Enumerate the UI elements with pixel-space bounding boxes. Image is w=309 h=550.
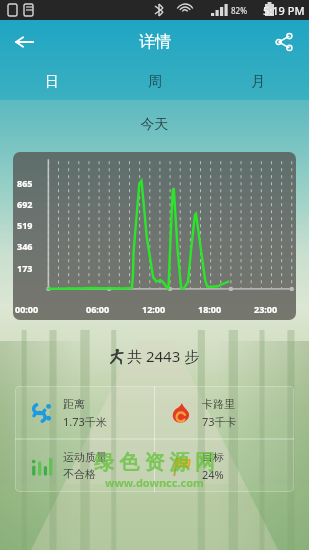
- staticText: 346: [17, 240, 33, 252]
- staticText: 不合格: [63, 467, 96, 481]
- staticText: 日: [45, 73, 59, 91]
- staticText: 目标: [202, 450, 224, 464]
- staticText: 运动质量: [63, 450, 107, 464]
- staticText: 周: [148, 73, 162, 91]
- staticText: 865: [17, 177, 33, 189]
- staticText: 18:00: [198, 303, 222, 315]
- staticText: 173: [17, 262, 33, 274]
- button[interactable]: 月: [206, 64, 309, 100]
- staticText: www.downcc.com: [105, 475, 204, 490]
- button[interactable]: 865: [13, 152, 296, 320]
- staticText: 详情: [139, 32, 171, 52]
- staticText: 06:00: [86, 303, 110, 315]
- button[interactable]: Share: [267, 25, 301, 59]
- staticText: 23:00: [254, 303, 278, 315]
- staticText: 24%: [202, 467, 224, 482]
- staticText: 月: [251, 73, 265, 91]
- button[interactable]: 日: [0, 64, 103, 100]
- staticText: 今天: [0, 116, 309, 134]
- staticText: 1.73千米: [63, 414, 107, 429]
- staticText: 卡路里: [202, 397, 235, 411]
- button[interactable]: Back: [6, 24, 42, 60]
- staticText: 距离: [63, 397, 85, 411]
- staticText: 519: [17, 219, 33, 231]
- staticText: 12:00: [142, 303, 166, 315]
- staticText: 共 2443 步: [127, 346, 200, 366]
- staticText: 绿 色 资 源 网: [94, 448, 215, 475]
- staticText: 73千卡: [202, 414, 237, 429]
- staticText: 692: [17, 198, 33, 210]
- button[interactable]: 卡路里: [154, 386, 294, 439]
- button[interactable]: 目标: [154, 439, 294, 492]
- button[interactable]: 运动质量: [15, 439, 154, 492]
- button[interactable]: 距离: [15, 386, 154, 439]
- button[interactable]: 周: [103, 64, 206, 100]
- staticText: 82%: [231, 5, 247, 16]
- staticText: 00:00: [15, 303, 39, 315]
- staticText: 5:19 PM: [263, 3, 305, 18]
